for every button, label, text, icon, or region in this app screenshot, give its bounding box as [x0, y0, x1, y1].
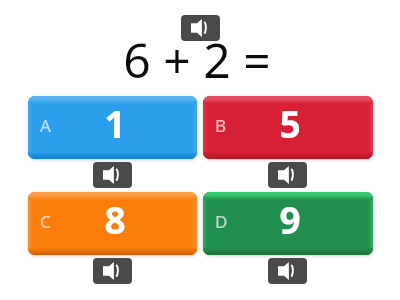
- staticText: A: [40, 114, 51, 137]
- staticText: B: [215, 114, 227, 137]
- staticText: 1: [104, 98, 126, 148]
- button[interactable]: Read answer D aloud: [268, 258, 307, 284]
- button[interactable]: Read answer A aloud: [93, 162, 132, 188]
- button[interactable]: C: [28, 192, 197, 255]
- button[interactable]: D: [203, 192, 373, 255]
- staticText: D: [215, 210, 228, 233]
- button[interactable]: B: [203, 96, 373, 159]
- button[interactable]: Read answer C aloud: [93, 258, 132, 284]
- button[interactable]: A: [28, 96, 197, 159]
- staticText: 5: [279, 98, 301, 148]
- staticText: 9: [279, 194, 301, 244]
- staticText: 6 + 2 =: [123, 27, 271, 92]
- button[interactable]: Read the question aloud: [181, 15, 220, 41]
- staticText: C: [40, 210, 51, 233]
- button[interactable]: Read answer B aloud: [268, 162, 307, 188]
- staticText: 8: [104, 194, 126, 244]
